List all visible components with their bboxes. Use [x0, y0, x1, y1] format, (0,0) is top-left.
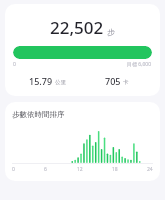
staticText: 目標 6,000: [127, 61, 152, 68]
staticText: 24: [147, 166, 153, 173]
staticText: 15.79: [29, 75, 53, 87]
staticText: 6: [44, 166, 47, 173]
staticText: 12: [77, 166, 83, 173]
staticText: 卡: [123, 79, 129, 86]
button[interactable]: 22,502: [5, 4, 160, 96]
staticText: 0: [13, 61, 16, 68]
staticText: 步: [107, 27, 115, 37]
staticText: 0: [12, 166, 15, 173]
staticText: 公里: [55, 79, 66, 86]
staticText: 步數依時間排序: [12, 110, 65, 119]
button[interactable]: 705: [82, 75, 152, 87]
button[interactable]: 15.79: [13, 75, 82, 87]
staticText: 22,502: [50, 16, 104, 39]
staticText: 18: [112, 166, 118, 173]
button[interactable]: 步數依時間排序: [5, 102, 160, 181]
staticText: 705: [105, 75, 121, 87]
